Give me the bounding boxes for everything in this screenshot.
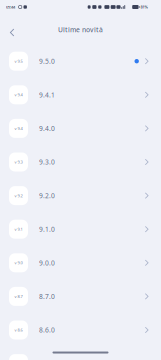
button[interactable]: v 9.4 bbox=[0, 78, 161, 112]
staticText: v 9.4 bbox=[14, 126, 22, 131]
button[interactable]: v 8.7 bbox=[0, 280, 161, 313]
staticText: v 9.0 bbox=[14, 260, 22, 265]
staticText: v 9.2 bbox=[14, 193, 22, 198]
button[interactable]: v 9.0 bbox=[0, 246, 161, 280]
staticText: 9.5.0 bbox=[39, 57, 55, 66]
button[interactable]: v 8.6 bbox=[0, 313, 161, 347]
button[interactable]: v 8.5 bbox=[0, 347, 161, 360]
staticText: 9.4.1 bbox=[39, 90, 55, 99]
staticText: 09:44 bbox=[6, 4, 15, 10]
staticText: 9.2.0 bbox=[39, 191, 55, 200]
staticText: 9.1.0 bbox=[39, 225, 55, 234]
staticText: v 8.7 bbox=[14, 294, 22, 299]
staticText: 9.0.0 bbox=[39, 258, 55, 267]
staticText: v 8.6 bbox=[14, 327, 22, 333]
button[interactable]: v 9.3 bbox=[0, 145, 161, 179]
staticText: 9.3.0 bbox=[39, 158, 55, 166]
staticText: 81% bbox=[140, 4, 147, 10]
staticText: v 9.3 bbox=[14, 159, 22, 165]
staticText: v 9.5 bbox=[14, 58, 22, 64]
button[interactable]: Back bbox=[0, 15, 23, 43]
staticText: 8.6.0 bbox=[39, 326, 55, 334]
staticText: v 9.4 bbox=[14, 92, 22, 97]
staticText: 9.4.0 bbox=[39, 124, 55, 133]
staticText: v 9.1 bbox=[14, 226, 22, 232]
staticText: Ultime novità bbox=[58, 25, 103, 34]
button[interactable]: v 9.2 bbox=[0, 179, 161, 212]
staticText: 8.7.0 bbox=[39, 292, 55, 301]
button[interactable]: v 9.5 bbox=[0, 44, 161, 78]
button[interactable]: v 9.4 bbox=[0, 112, 161, 145]
button[interactable]: v 9.1 bbox=[0, 212, 161, 246]
